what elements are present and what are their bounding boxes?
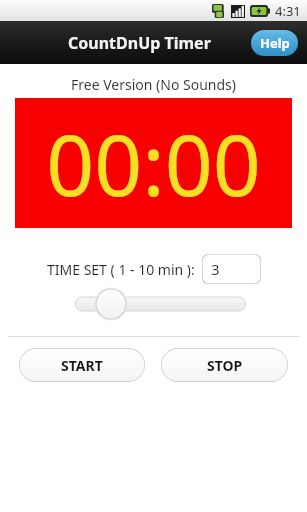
staticText: 00:00 — [46, 106, 261, 220]
staticText: 3 — [211, 259, 220, 279]
staticText: Help — [260, 34, 290, 52]
staticText: STOP — [207, 356, 243, 375]
button[interactable]: START — [19, 348, 145, 382]
staticText: 4:31 — [275, 2, 301, 20]
staticText: TIME SET ( 1 - 10 min ): — [47, 260, 195, 279]
staticText: Free Version (No Sounds) — [71, 75, 237, 94]
staticText: START — [61, 356, 103, 375]
button[interactable]: Help — [251, 30, 298, 56]
staticText: CountDnUp Timer — [68, 32, 211, 54]
button[interactable]: STOP — [161, 348, 288, 382]
button[interactable]: 3 — [202, 254, 261, 284]
